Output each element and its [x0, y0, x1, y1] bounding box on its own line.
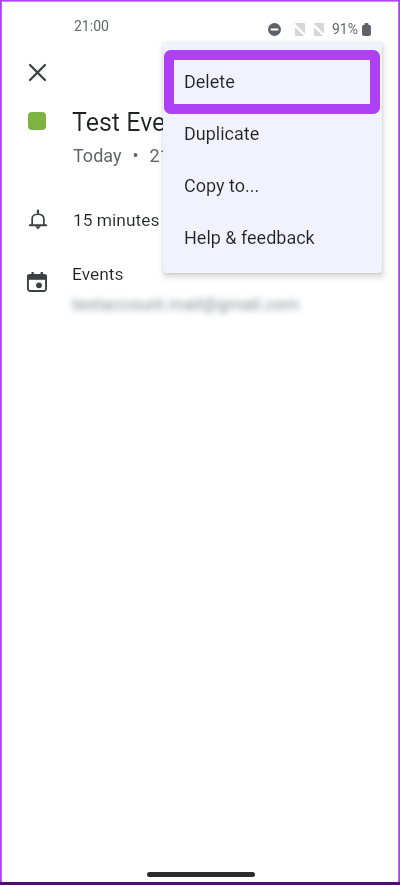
staticText: Test Event: [72, 108, 188, 137]
button[interactable]: Events: [0, 264, 400, 316]
button[interactable]: Delete: [163, 55, 382, 107]
staticText: Today • 21:00 – 22:00: [73, 145, 260, 166]
button[interactable]: Duplicate: [163, 107, 382, 159]
button[interactable]: 15 minutes before: [0, 200, 400, 240]
button[interactable]: Copy to...: [163, 159, 382, 211]
staticText: 21:00: [74, 18, 109, 34]
button[interactable]: Close: [21, 56, 53, 88]
staticText: Duplicate: [184, 123, 260, 144]
staticText: Copy to...: [184, 175, 260, 196]
staticText: 91%: [332, 21, 358, 37]
staticText: Delete: [184, 71, 235, 92]
staticText: Help & feedback: [184, 227, 315, 248]
staticText: 15 minutes before: [73, 210, 214, 230]
staticText: Events: [72, 264, 124, 284]
staticText: testaccount.mail@gmail.com: [72, 294, 300, 314]
button[interactable]: Help & feedback: [163, 211, 382, 263]
